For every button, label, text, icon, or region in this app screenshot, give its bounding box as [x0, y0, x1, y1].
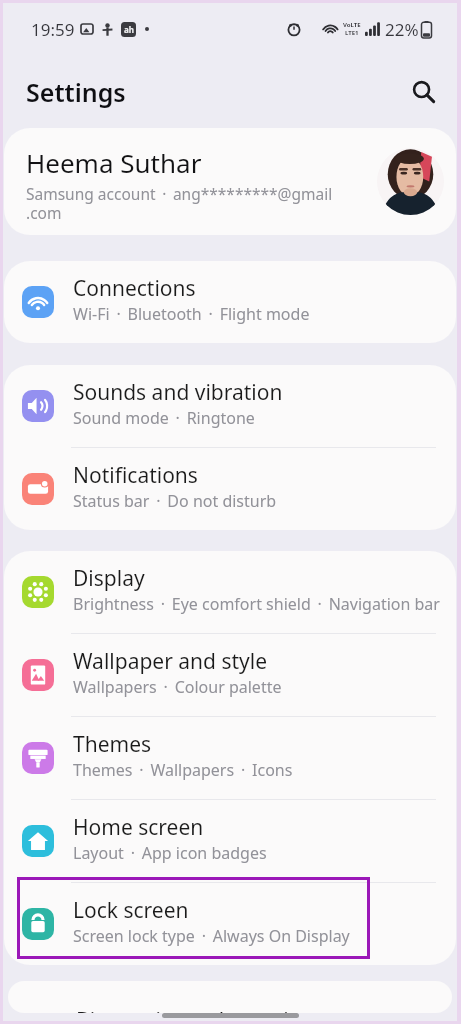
staticText: Display [73, 564, 145, 593]
staticText: Samsung account · ang*********@gmail .co… [26, 183, 333, 223]
staticText: Layout · App icon badges [73, 842, 267, 864]
button[interactable]: Home screen [4, 800, 456, 882]
button[interactable]: Sounds and vibration [4, 365, 456, 447]
staticText: Sounds and vibration [73, 378, 283, 407]
staticText: Biometrics and security [76, 1006, 307, 1013]
staticText: Notifications [73, 461, 198, 490]
button[interactable]: Wallpaper and style [4, 634, 456, 716]
staticText: 19:59 [31, 18, 75, 41]
button[interactable]: Connections [4, 261, 456, 343]
staticText: Settings [26, 75, 126, 109]
staticText: Home screen [73, 813, 204, 842]
staticText: Themes [73, 730, 152, 759]
staticText: Wallpapers · Colour palette [73, 676, 282, 698]
staticText: Status bar · Do not disturb [73, 490, 277, 512]
staticText: Lock screen [73, 896, 189, 925]
button[interactable]: Display [4, 551, 456, 633]
staticText: Wi-Fi · Bluetooth · Flight mode [73, 303, 310, 325]
button[interactable]: Notifications [4, 448, 456, 530]
staticText: Themes · Wallpapers · Icons [73, 759, 293, 781]
staticText: Screen lock type · Always On Display [73, 925, 350, 947]
staticText: ah [124, 24, 134, 35]
button[interactable]: Biometrics and security [8, 981, 452, 1013]
staticText: LTE1 [345, 29, 359, 37]
button[interactable]: Heema Suthar [4, 128, 456, 235]
staticText: Sound mode · Ringtone [73, 407, 255, 429]
staticText: VoLTE [343, 21, 361, 29]
staticText: Heema Suthar [26, 145, 202, 180]
button[interactable]: Themes [4, 717, 456, 799]
staticText: 22% [385, 18, 419, 41]
button[interactable]: Lock screen [4, 883, 456, 965]
button[interactable]: Search [400, 68, 448, 116]
staticText: Brightness · Eye comfort shield · Naviga… [73, 593, 440, 615]
staticText: Wallpaper and style [73, 647, 268, 676]
staticText: Connections [73, 274, 196, 303]
